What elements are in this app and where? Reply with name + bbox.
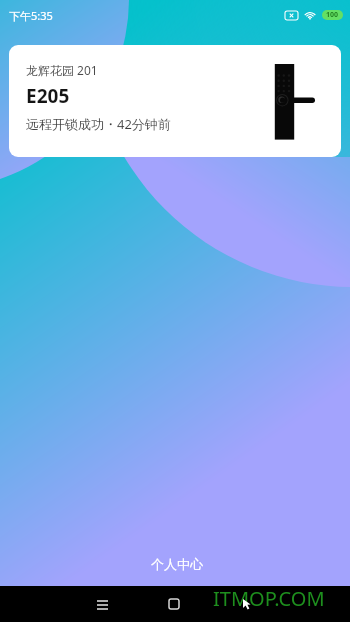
staticText: 下午5:35: [9, 8, 53, 23]
button[interactable]: Back: [228, 586, 264, 622]
staticText: 个人中心: [151, 556, 203, 572]
staticText: E205: [26, 83, 70, 109]
staticText: ITMOP.COM: [213, 585, 325, 612]
button[interactable]: Recent apps: [84, 586, 120, 622]
staticText: 远程开锁成功・42分钟前: [26, 115, 171, 133]
staticText: 龙辉花园 201: [26, 62, 98, 78]
button[interactable]: Home: [156, 586, 192, 622]
staticText: 100: [326, 10, 339, 20]
button[interactable]: 龙辉花园 201: [9, 45, 341, 157]
button[interactable]: 个人中心: [137, 551, 217, 577]
